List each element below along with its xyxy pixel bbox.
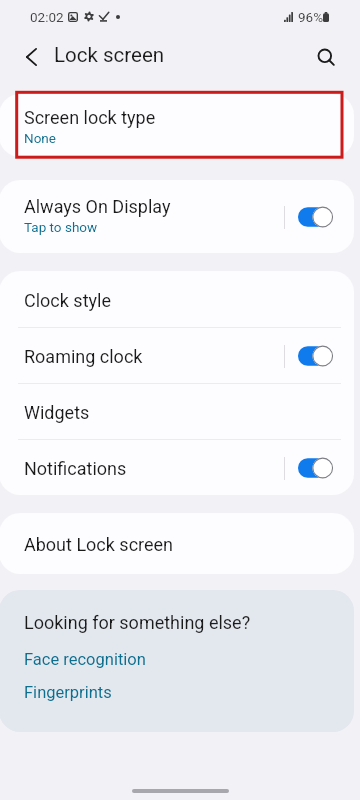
staticText: Looking for something else?	[24, 612, 251, 633]
button[interactable]: Search	[308, 39, 344, 75]
staticText: Fingerprints	[24, 683, 112, 702]
button[interactable]: Roaming clock	[0, 328, 354, 383]
staticText: Tap to show	[24, 219, 98, 235]
staticText: 96%	[298, 9, 324, 25]
staticText: 02:02	[30, 9, 64, 25]
staticText: Widgets	[24, 402, 90, 423]
staticText: Notifications	[24, 458, 127, 479]
button[interactable]: About Lock screen	[0, 513, 354, 574]
button[interactable]: Face recognition	[24, 650, 146, 669]
staticText: Always On Display	[24, 196, 171, 217]
staticText: Clock style	[24, 290, 111, 311]
staticText: Screen lock type	[24, 107, 156, 128]
button[interactable]: Clock style	[0, 271, 354, 327]
staticText: Face recognition	[24, 650, 146, 669]
staticText: Lock screen	[54, 43, 165, 67]
staticText: None	[24, 130, 56, 146]
button[interactable]: Widgets	[0, 384, 354, 439]
button[interactable]	[298, 343, 332, 369]
button[interactable]: Back	[13, 39, 49, 75]
button[interactable]: Always On Display	[0, 180, 354, 253]
staticText: Roaming clock	[24, 346, 143, 367]
button[interactable]: Notifications	[0, 440, 354, 495]
button[interactable]	[298, 204, 332, 230]
staticText: About Lock screen	[24, 534, 174, 555]
button[interactable]: Fingerprints	[24, 683, 112, 702]
button[interactable]	[298, 455, 332, 481]
button[interactable]: Screen lock type	[0, 94, 354, 157]
